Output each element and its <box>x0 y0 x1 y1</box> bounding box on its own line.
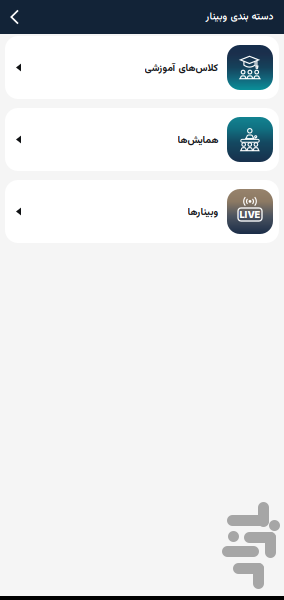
button[interactable]: وبینارها <box>5 180 279 243</box>
staticText: LIVE <box>239 209 260 220</box>
staticText: وبینارها <box>187 205 218 220</box>
button[interactable]: کلاس‌های آموزشی <box>5 36 279 99</box>
button[interactable]: همایش‌ها <box>5 108 279 171</box>
staticText: دسته بندی وبینار <box>205 9 273 25</box>
staticText: کلاس‌های آموزشی <box>144 61 218 76</box>
staticText: همایش‌ها <box>177 133 218 148</box>
button[interactable]: Back <box>0 0 31 34</box>
